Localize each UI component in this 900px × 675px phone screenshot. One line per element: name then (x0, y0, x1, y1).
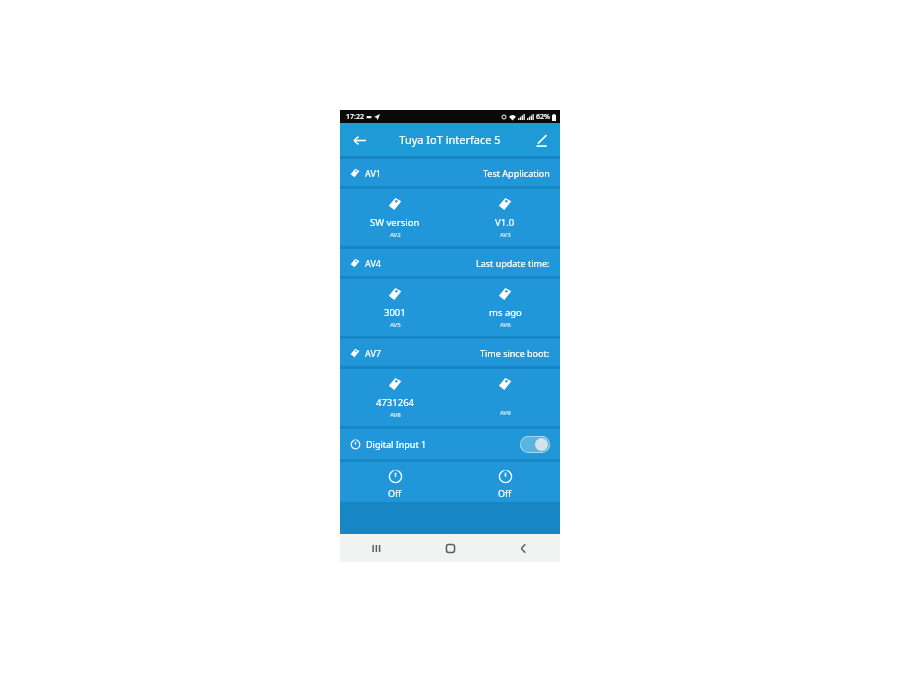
button[interactable]: 4731264 (340, 369, 450, 426)
staticText: AV7 (365, 347, 381, 359)
staticText: 17:22 (346, 112, 364, 122)
staticText: Last update time: (476, 257, 550, 269)
staticText: AV8 (390, 411, 401, 419)
button[interactable]: Toggle Digital Input 1 (520, 436, 550, 453)
button[interactable]: Power toggle Off (450, 462, 560, 502)
staticText: AV2 (390, 231, 401, 239)
staticText: AV5 (390, 321, 401, 329)
staticText: 62% (536, 112, 550, 122)
button[interactable]: Digital Input 1 (340, 429, 560, 459)
button[interactable]: 3001 (340, 279, 450, 336)
staticText: AV1 (365, 167, 381, 179)
staticText: Digital Input 1 (366, 438, 427, 450)
staticText: AV6 (500, 321, 511, 329)
button[interactable]: Power toggle Off (340, 462, 450, 502)
staticText: 4731264 (376, 396, 415, 409)
staticText: V1.0 (495, 216, 515, 229)
staticText: AV3 (500, 231, 511, 239)
staticText: AV9 (500, 409, 511, 417)
staticText: Test Application (483, 167, 550, 179)
button[interactable]: AV7 (340, 339, 560, 366)
button[interactable]: AV4 (340, 249, 560, 276)
staticText: Off (498, 487, 512, 499)
button[interactable]: AV1 (340, 159, 560, 186)
staticText: Tuya IoT interface 5 (399, 132, 501, 147)
button[interactable]: Edit (530, 129, 552, 151)
button[interactable]: Back (487, 534, 560, 562)
staticText: 3001 (384, 306, 406, 319)
button[interactable]: Home (414, 534, 487, 562)
button[interactable]: V1.0 (450, 189, 560, 246)
button[interactable]: Recent apps (340, 534, 414, 562)
staticText: AV4 (365, 257, 381, 269)
staticText: SW version (370, 216, 420, 229)
button[interactable]: Back (348, 129, 370, 151)
staticText: Off (388, 487, 402, 499)
button[interactable]: AV9 (450, 369, 560, 426)
staticText: ms ago (489, 306, 522, 319)
staticText: Time since boot: (480, 347, 550, 359)
button[interactable]: ms ago (450, 279, 560, 336)
button[interactable]: SW version (340, 189, 450, 246)
